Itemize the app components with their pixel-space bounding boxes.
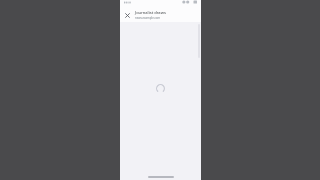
button[interactable]: Close bbox=[122, 10, 133, 21]
button[interactable]: Home bbox=[148, 176, 174, 178]
staticText: news.example.com bbox=[135, 16, 161, 20]
staticText: Journalist draws bbox=[135, 10, 166, 15]
button[interactable]: Journalist draws bbox=[135, 10, 198, 20]
